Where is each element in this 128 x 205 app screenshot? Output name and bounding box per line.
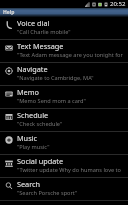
staticText: "Check schedule" bbox=[17, 120, 63, 128]
staticText: Music bbox=[17, 133, 38, 143]
staticText: Navigate bbox=[17, 64, 48, 74]
button[interactable]: Voice dial bbox=[0, 17, 128, 40]
button[interactable]: Search bbox=[0, 178, 128, 201]
button[interactable]: Navigate bbox=[0, 63, 128, 86]
staticText: "Navigate to Cambridge, MA" bbox=[17, 74, 94, 82]
staticText: Help bbox=[3, 9, 15, 16]
staticText: "Call Charlie mobile" bbox=[17, 28, 71, 36]
staticText: "Twitter update Why do humans love to fl… bbox=[17, 166, 128, 174]
staticText: "Search Porsche sport" bbox=[17, 189, 78, 197]
button[interactable]: Text Message bbox=[0, 40, 128, 63]
staticText: Social update bbox=[17, 156, 64, 166]
staticText: Memo bbox=[17, 87, 39, 97]
staticText: Schedule bbox=[17, 110, 49, 120]
staticText: Text Message bbox=[17, 41, 64, 51]
staticText: Search bbox=[17, 179, 41, 189]
button[interactable]: Schedule bbox=[0, 109, 128, 132]
staticText: 20:52 bbox=[110, 0, 126, 8]
staticText: "Memo Send mom a card" bbox=[17, 97, 86, 105]
button[interactable]: Memo bbox=[0, 86, 128, 109]
button[interactable]: Social update bbox=[0, 155, 128, 178]
staticText: "Play music" bbox=[17, 143, 50, 151]
staticText: Voice dial bbox=[17, 18, 50, 28]
staticText: "Text Adam message are you tonight for d… bbox=[17, 51, 128, 59]
button[interactable]: Music bbox=[0, 132, 128, 155]
button[interactable]: Help bbox=[0, 8, 128, 17]
